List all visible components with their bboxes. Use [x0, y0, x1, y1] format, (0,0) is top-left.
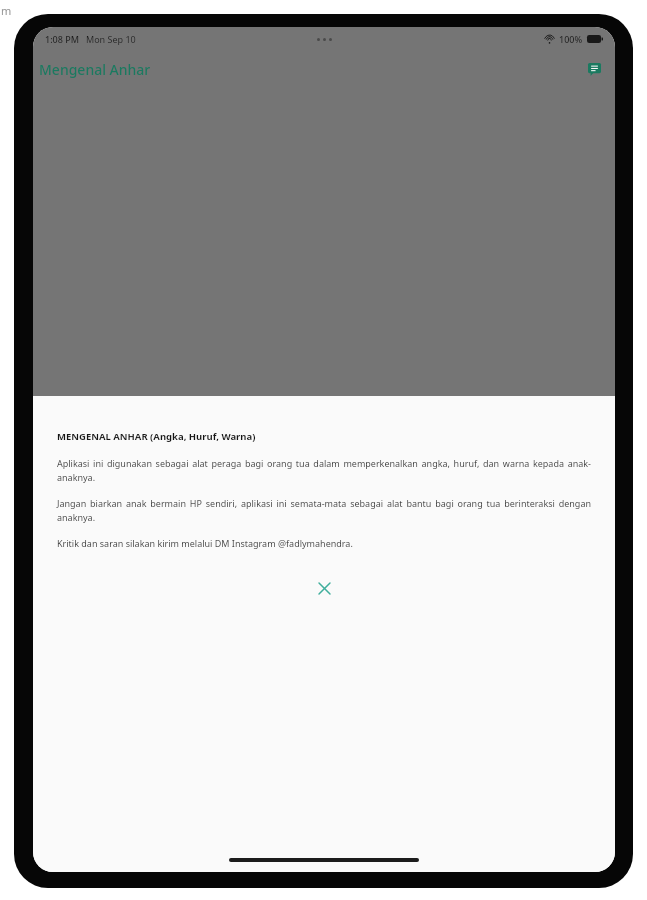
staticText: Aplikasi ini digunakan sebagai alat pera… — [57, 457, 591, 484]
button[interactable]: Close — [309, 573, 339, 603]
button[interactable]: Feedback — [581, 56, 607, 82]
staticText: 1:08 PM — [45, 33, 79, 45]
staticText: Kritik dan saran silakan kirim melalui D… — [57, 537, 353, 549]
staticText: m — [1, 3, 12, 18]
staticText: MENGENAL ANHAR (Angka, Huruf, Warna) — [57, 430, 256, 443]
staticText: Jangan biarkan anak bermain HP sendiri, … — [57, 497, 591, 524]
staticText: Mon Sep 10 — [86, 33, 136, 45]
staticText: 100% — [559, 33, 583, 45]
staticText: Mengenal Anhar — [39, 60, 151, 79]
